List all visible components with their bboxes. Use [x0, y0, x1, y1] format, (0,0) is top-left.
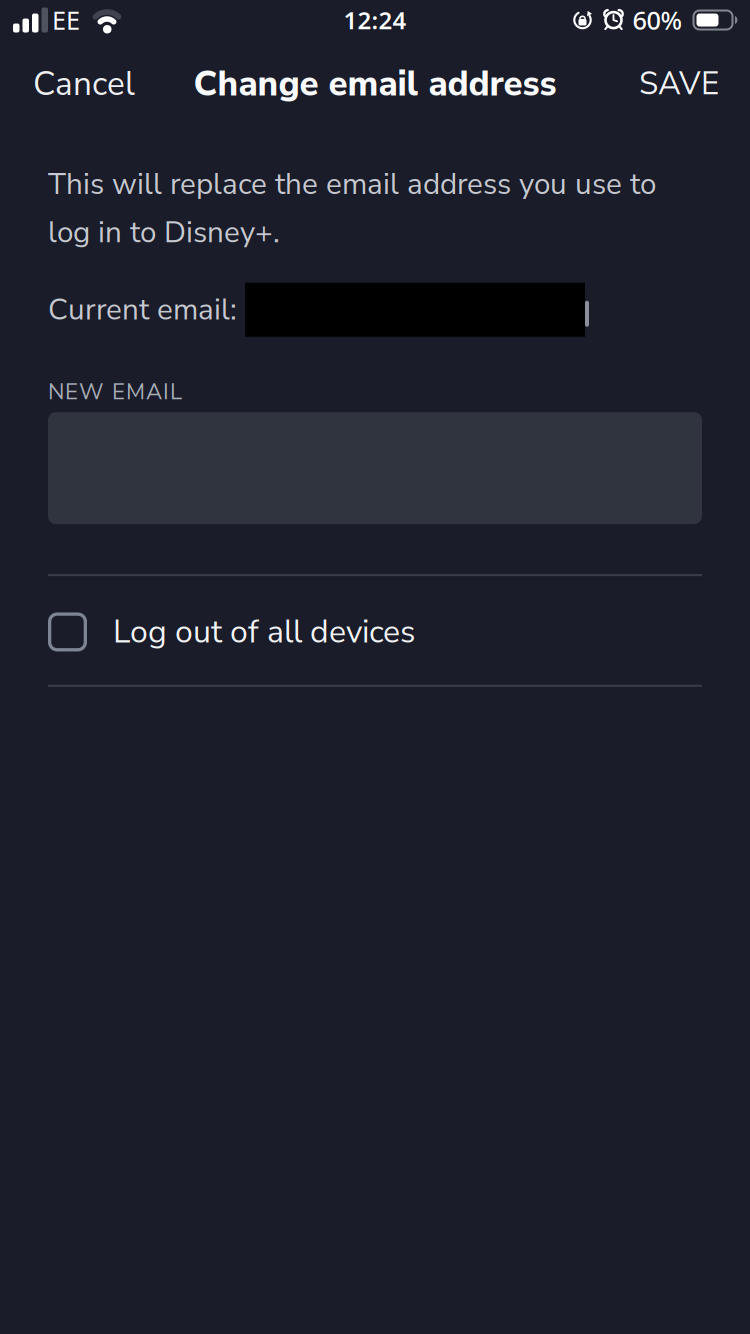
staticText: Log out of all devices: [113, 610, 415, 654]
staticText: EE: [52, 3, 80, 37]
staticText: 60%: [632, 3, 682, 37]
staticText: Cancel: [33, 61, 135, 107]
staticText: This will replace the email address you …: [48, 164, 656, 204]
button[interactable]: SAVE: [639, 63, 719, 105]
staticText: Current email:: [48, 290, 237, 330]
button[interactable]: Log out of all devices: [48, 610, 415, 654]
staticText: NEW EMAIL: [48, 377, 182, 407]
staticText: SAVE: [639, 63, 719, 105]
staticText: Change email address: [193, 60, 556, 108]
staticText: 12:24: [343, 4, 406, 36]
button[interactable]: Cancel: [33, 61, 135, 107]
staticText: log in to Disney+.: [48, 212, 280, 253]
